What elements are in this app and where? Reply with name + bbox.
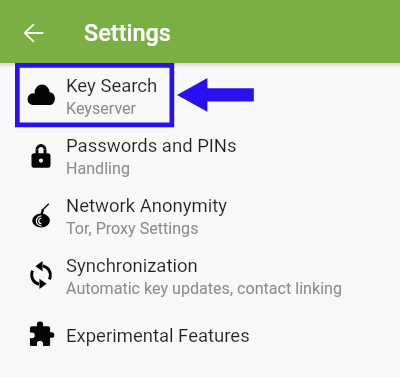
staticText: Passwords and PINs [66, 135, 237, 157]
button[interactable]: Navigate up [10, 9, 57, 56]
staticText: Synchronization [66, 255, 198, 277]
staticText: Network Anonymity [66, 195, 228, 217]
staticText: Automatic key updates, contact linking [66, 279, 342, 298]
staticText: Keyserver [66, 99, 137, 118]
staticText: Settings [84, 19, 172, 47]
staticText: Handling [66, 159, 130, 178]
staticText: Key Search [66, 75, 158, 97]
button[interactable]: Passwords and PINs [0, 128, 400, 188]
staticText: Tor, Proxy Settings [66, 219, 199, 238]
button[interactable]: Network Anonymity [0, 188, 400, 248]
button[interactable]: Experimental Features [0, 308, 400, 368]
button[interactable]: Synchronization [0, 248, 400, 308]
button[interactable]: Key Search [0, 68, 400, 128]
staticText: Experimental Features [66, 325, 250, 347]
